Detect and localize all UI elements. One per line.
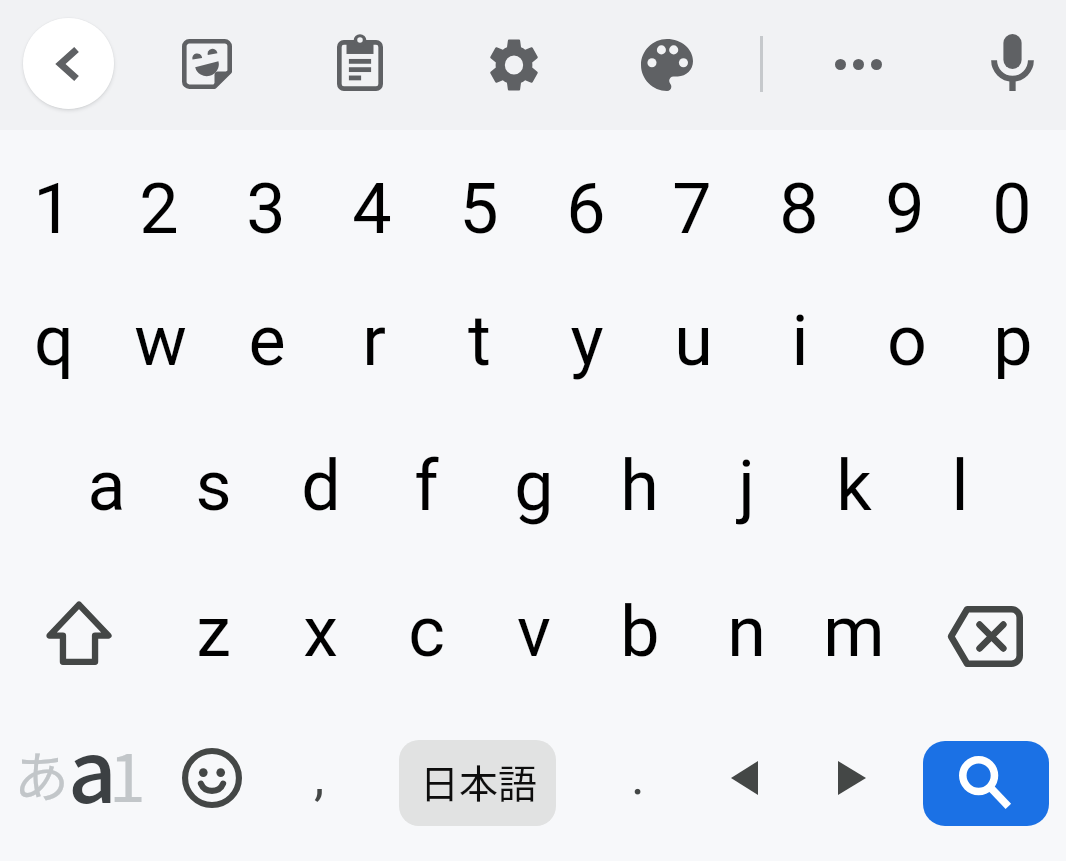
button[interactable]: n xyxy=(693,566,800,712)
staticText: 4 xyxy=(352,168,392,250)
button[interactable]: b xyxy=(586,566,693,712)
button[interactable]: p xyxy=(959,275,1066,421)
staticText: v xyxy=(517,591,551,673)
staticText: , xyxy=(314,747,325,808)
staticText: 1 xyxy=(33,168,73,250)
staticText: z xyxy=(196,591,231,673)
button[interactable]: Space xyxy=(399,740,556,826)
button[interactable]: t xyxy=(426,275,533,421)
staticText: e xyxy=(248,300,286,382)
button[interactable]: g xyxy=(480,421,587,566)
staticText: w xyxy=(134,300,187,382)
button[interactable]: j xyxy=(693,421,800,566)
button[interactable]: Themes xyxy=(614,11,720,117)
button[interactable]: Emoji xyxy=(158,712,264,861)
button[interactable]: d xyxy=(267,421,374,566)
button[interactable]: 3 xyxy=(212,130,319,275)
button[interactable]: x xyxy=(267,566,374,712)
button[interactable]: u xyxy=(640,275,747,421)
staticText: q xyxy=(34,300,74,382)
button[interactable]: Previous xyxy=(693,712,799,861)
staticText: x xyxy=(303,591,338,673)
staticText: s xyxy=(195,445,232,527)
button[interactable]: 7 xyxy=(638,130,745,275)
button[interactable]: 1 xyxy=(0,130,106,275)
staticText: p xyxy=(993,300,1033,382)
button[interactable]: o xyxy=(853,275,960,421)
staticText: a xyxy=(87,445,126,527)
button[interactable]: 5 xyxy=(425,130,532,275)
button[interactable]: m xyxy=(800,566,907,712)
staticText: 0 xyxy=(992,168,1032,250)
button[interactable]: Shift xyxy=(0,566,160,712)
staticText: m xyxy=(823,591,885,673)
button[interactable]: More options xyxy=(805,11,911,117)
button[interactable]: Stickers xyxy=(153,11,259,117)
staticText: d xyxy=(301,445,341,527)
button[interactable]: q xyxy=(0,275,107,421)
button[interactable]: l xyxy=(906,421,1013,566)
button[interactable]: Switch input mode xyxy=(0,712,158,861)
button[interactable]: c xyxy=(373,566,480,712)
button[interactable]: Settings xyxy=(461,11,567,117)
button[interactable]: 4 xyxy=(318,130,425,275)
button[interactable]: k xyxy=(800,421,907,566)
staticText: h xyxy=(620,445,659,527)
staticText: 7 xyxy=(672,168,712,250)
button[interactable]: a xyxy=(53,421,160,566)
button[interactable]: Search xyxy=(923,741,1049,826)
staticText: 6 xyxy=(566,168,606,250)
staticText: f xyxy=(414,445,439,527)
staticText: n xyxy=(727,591,766,673)
button[interactable]: 0 xyxy=(958,130,1065,275)
staticText: . xyxy=(631,746,645,807)
staticText: t xyxy=(468,300,491,382)
staticText: j xyxy=(738,445,755,527)
button[interactable]: , xyxy=(266,712,372,861)
button[interactable]: y xyxy=(533,275,640,421)
button[interactable]: h xyxy=(586,421,693,566)
staticText: a xyxy=(68,704,117,827)
staticText: 3 xyxy=(246,168,286,250)
staticText: i xyxy=(791,300,809,382)
staticText: 1 xyxy=(109,725,146,821)
staticText: r xyxy=(362,300,386,382)
button[interactable]: 9 xyxy=(851,130,958,275)
staticText: g xyxy=(514,445,554,527)
staticText: 日本語 xyxy=(420,753,538,809)
staticText: 2 xyxy=(139,168,179,250)
staticText: l xyxy=(951,445,969,527)
button[interactable]: Voice input xyxy=(960,11,1066,117)
button[interactable]: i xyxy=(746,275,853,421)
staticText: あ xyxy=(14,733,70,813)
button[interactable]: Next xyxy=(799,712,905,861)
staticText: u xyxy=(674,300,713,382)
staticText: c xyxy=(408,591,445,673)
button[interactable]: Backspace xyxy=(906,566,1066,712)
button[interactable]: r xyxy=(320,275,427,421)
button[interactable]: f xyxy=(373,421,480,566)
button[interactable]: v xyxy=(480,566,587,712)
button[interactable]: 8 xyxy=(745,130,852,275)
staticText: 8 xyxy=(779,168,819,250)
staticText: 5 xyxy=(459,168,499,250)
staticText: o xyxy=(887,300,927,382)
button[interactable]: . xyxy=(586,712,692,861)
button[interactable]: Back xyxy=(23,18,114,109)
button[interactable]: s xyxy=(160,421,267,566)
button[interactable]: 2 xyxy=(105,130,212,275)
staticText: b xyxy=(620,591,660,673)
staticText: y xyxy=(570,300,604,382)
button[interactable]: e xyxy=(213,275,320,421)
staticText: k xyxy=(836,445,872,527)
staticText: 9 xyxy=(885,168,925,250)
button[interactable]: z xyxy=(160,566,267,712)
button[interactable]: 6 xyxy=(532,130,639,275)
button[interactable]: Clipboard xyxy=(307,11,413,117)
button[interactable]: w xyxy=(107,275,214,421)
